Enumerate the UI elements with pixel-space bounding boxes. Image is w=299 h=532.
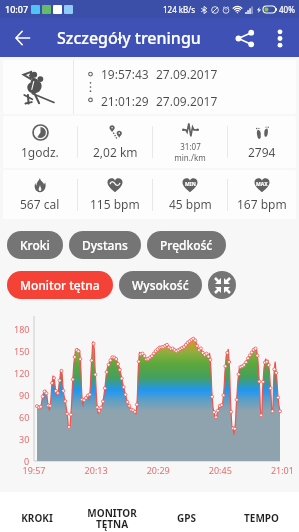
button[interactable]: Fullscreen bbox=[208, 271, 236, 299]
button[interactable]: Prędkość bbox=[147, 231, 226, 259]
staticText: MAX bbox=[256, 181, 268, 188]
staticText: 21:01:29 bbox=[101, 93, 149, 109]
staticText: Dystans bbox=[82, 237, 128, 253]
staticText: Wysokość bbox=[132, 277, 189, 293]
staticText: 19:57:43 bbox=[101, 66, 149, 82]
button[interactable]: TEMPO bbox=[224, 492, 299, 532]
staticText: 124 kB/s bbox=[163, 4, 196, 15]
staticText: Prędkość bbox=[160, 237, 213, 253]
button[interactable]: Kroki bbox=[7, 231, 63, 259]
staticText: 10:07 bbox=[5, 3, 29, 15]
staticText: 2,02 km bbox=[93, 144, 138, 160]
staticText: MONITOR TĘTNA bbox=[87, 506, 137, 531]
staticText: Szczegóły treningu bbox=[57, 27, 201, 49]
button[interactable]: Back bbox=[7, 22, 39, 54]
staticText: 31:07 bbox=[180, 141, 201, 152]
staticText: GPS bbox=[177, 511, 196, 525]
button[interactable]: Share bbox=[229, 22, 261, 54]
button[interactable]: MONITOR TĘTNA bbox=[74, 492, 149, 532]
staticText: 115 bpm bbox=[90, 196, 140, 212]
staticText: TEMPO bbox=[244, 511, 279, 525]
button[interactable]: More options bbox=[264, 22, 296, 54]
staticText: 567 cal bbox=[20, 196, 60, 212]
button[interactable]: Monitor tętna bbox=[7, 271, 113, 299]
staticText: 2794 bbox=[248, 144, 276, 160]
button[interactable]: GPS bbox=[149, 492, 224, 532]
staticText: MIN bbox=[185, 181, 196, 188]
staticText: min./km bbox=[174, 152, 206, 163]
staticText: 40% bbox=[279, 4, 295, 15]
staticText: KROKI bbox=[21, 511, 53, 525]
button[interactable]: KROKI bbox=[0, 492, 74, 532]
staticText: 27.09.2017 bbox=[156, 93, 218, 109]
staticText: Kroki bbox=[20, 237, 50, 253]
staticText: Monitor tętna bbox=[20, 277, 100, 293]
staticText: 167 bpm bbox=[237, 196, 287, 212]
staticText: 27.09.2017 bbox=[156, 66, 218, 82]
staticText: 45 bpm bbox=[169, 196, 212, 212]
button[interactable]: Wysokość bbox=[119, 271, 202, 299]
button[interactable]: Dystans bbox=[69, 231, 141, 259]
staticText: 1godz. bbox=[21, 144, 59, 160]
